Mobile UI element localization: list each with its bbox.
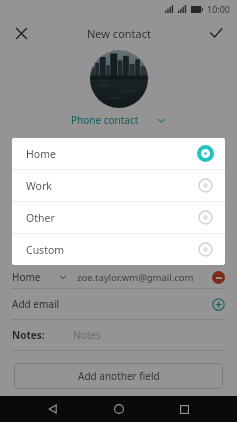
button[interactable]: Other — [12, 202, 225, 233]
staticText: Home — [26, 147, 56, 161]
button[interactable]: Contact photo — [90, 50, 148, 108]
button[interactable]: Home — [107, 397, 131, 421]
button[interactable]: Add another field — [14, 363, 223, 389]
button[interactable]: Close — [8, 20, 34, 46]
button[interactable]: Add email — [12, 289, 225, 319]
staticText: Custom — [26, 243, 65, 257]
button[interactable]: Work — [12, 170, 225, 201]
button[interactable]: Recents — [172, 397, 196, 421]
button[interactable]: Phone contact — [0, 110, 237, 130]
staticText: Add another field — [78, 369, 160, 383]
staticText: 10:00 — [207, 3, 231, 15]
staticText: Work — [26, 179, 52, 193]
button[interactable]: Home — [12, 266, 225, 288]
button[interactable]: Add email — [212, 298, 225, 311]
button[interactable]: Home — [12, 138, 225, 169]
staticText: Notes: — [12, 328, 45, 342]
staticText: zoe.taylor.wm@gmail.com — [77, 271, 194, 284]
staticText: Other — [26, 211, 55, 225]
staticText: Home — [12, 270, 41, 284]
button[interactable]: Notes: — [12, 320, 225, 350]
button[interactable]: Save — [203, 20, 229, 46]
staticText: Phone contact — [71, 113, 139, 127]
staticText: Add email — [12, 297, 60, 311]
button[interactable]: Back — [41, 397, 65, 421]
button[interactable]: Remove email — [212, 271, 225, 284]
button[interactable]: Custom — [12, 234, 225, 265]
staticText: New contact — [87, 26, 151, 41]
staticText: Notes — [73, 328, 101, 342]
